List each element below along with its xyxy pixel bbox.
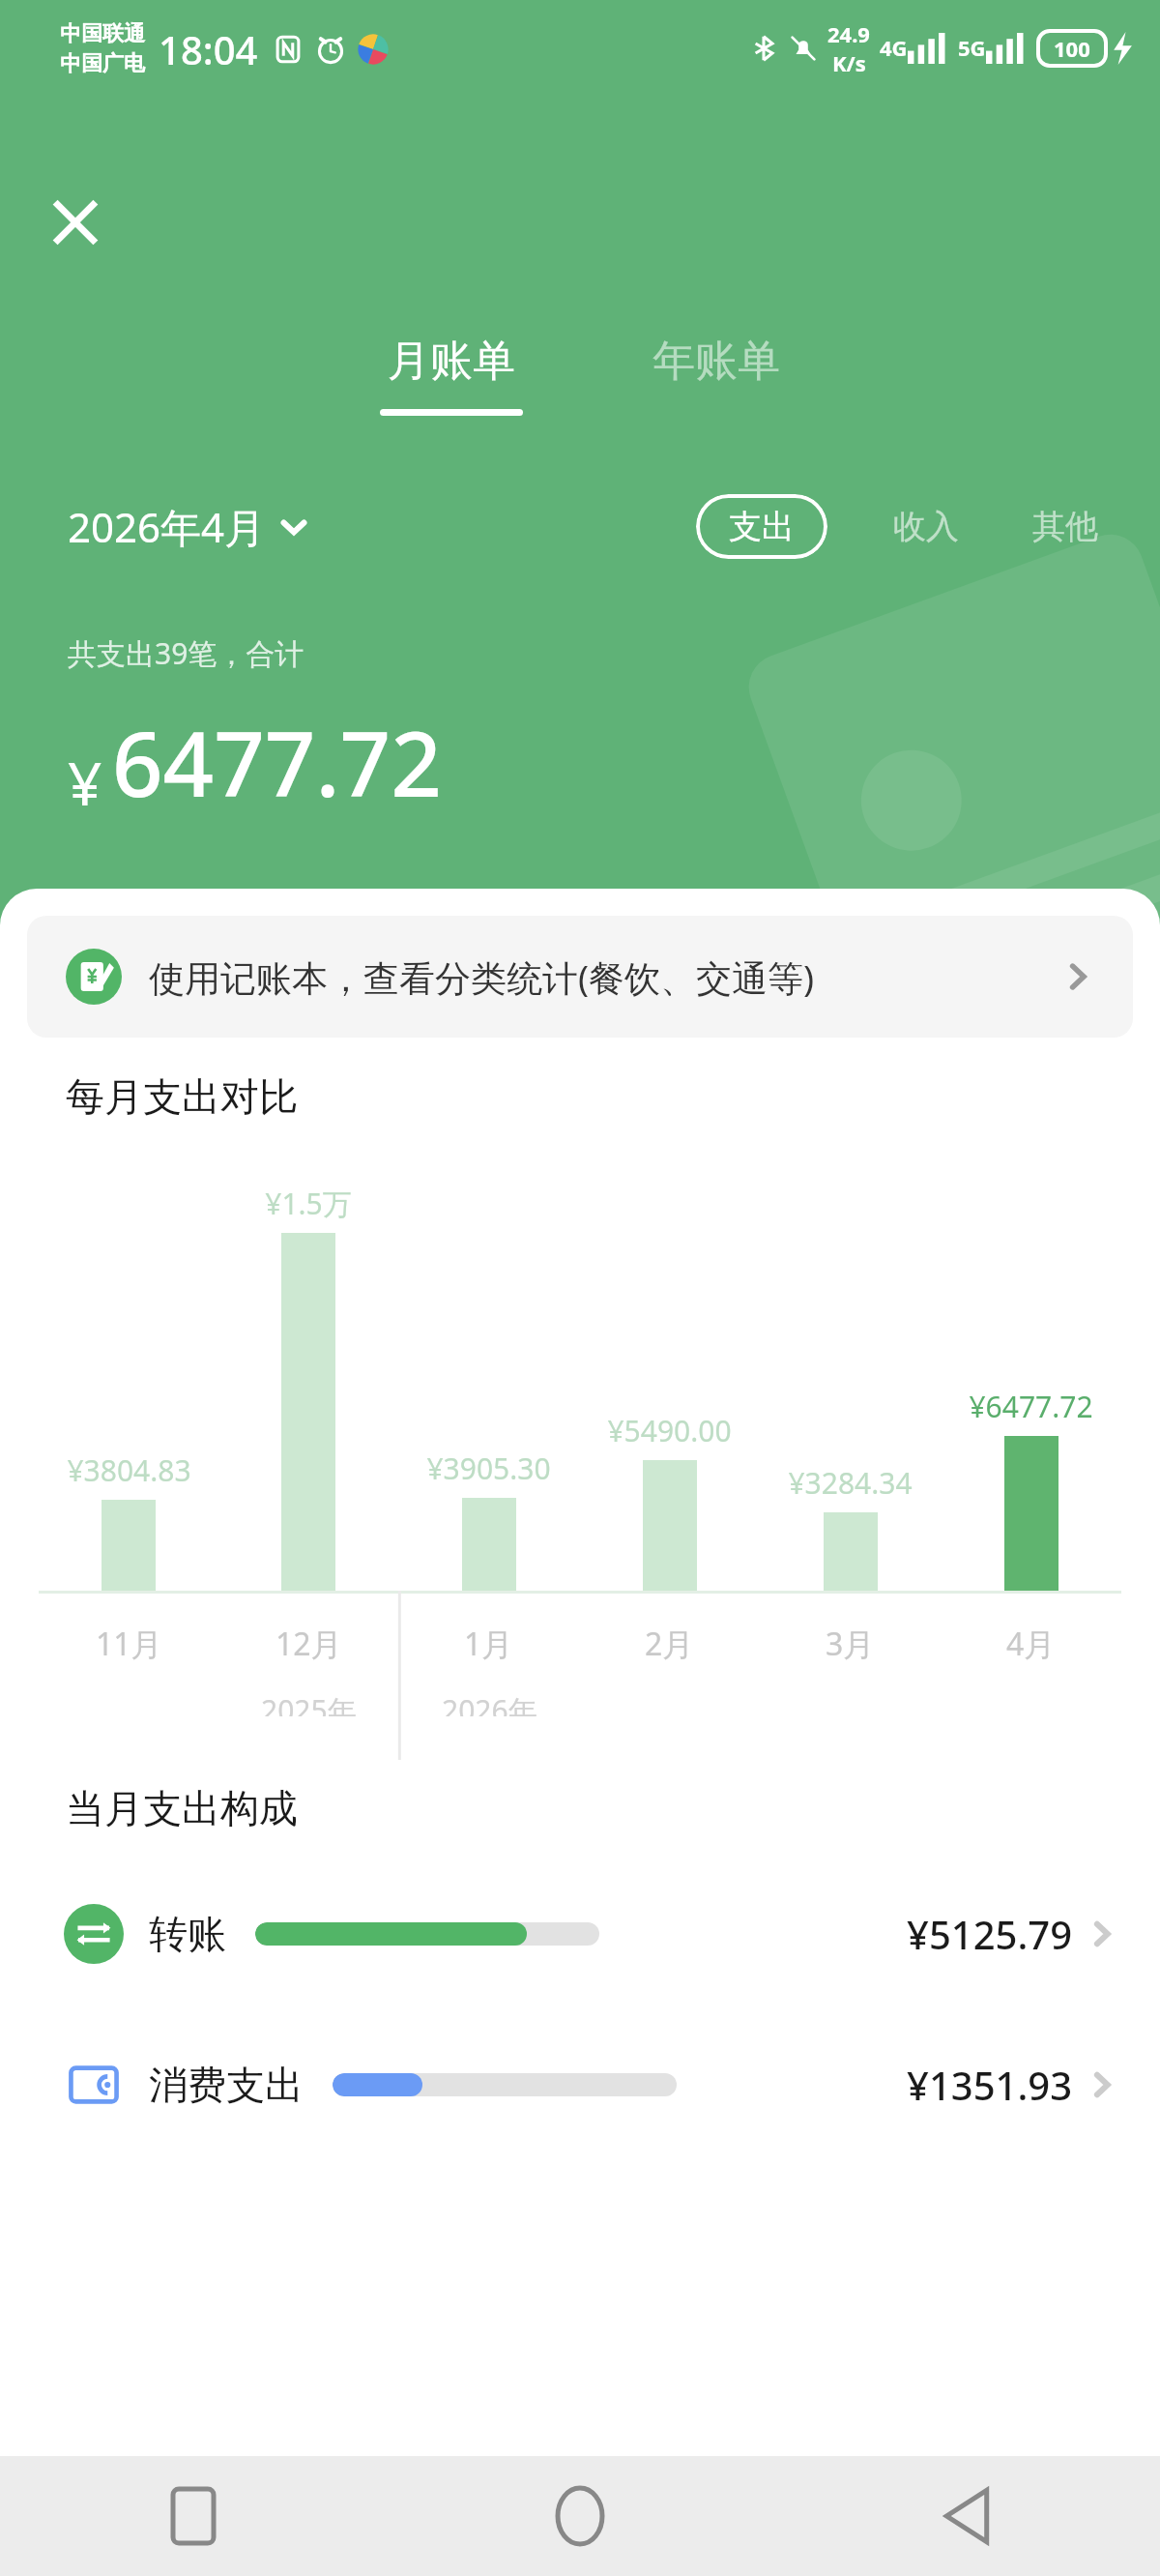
staticText: 支出: [729, 506, 795, 547]
button[interactable]: 支出: [696, 494, 827, 559]
staticText: ¥1.5万: [265, 1184, 352, 1223]
staticText: 月账单: [388, 335, 515, 388]
staticText: ¥5125.79: [907, 1908, 1073, 1960]
staticText: K/s: [832, 48, 866, 77]
staticText: 18:04: [159, 23, 258, 75]
staticText: 6477.72: [112, 702, 442, 823]
staticText: ¥5490.00: [607, 1411, 732, 1450]
button[interactable]: 月账单: [357, 329, 546, 422]
staticText: ¥: [68, 742, 102, 823]
staticText: 2026年: [442, 1690, 537, 1716]
staticText: 年账单: [652, 335, 780, 388]
button[interactable]: 年账单: [629, 329, 803, 422]
staticText: 4月: [1006, 1623, 1056, 1665]
button[interactable]: Close: [33, 180, 118, 265]
button[interactable]: 收入: [885, 494, 967, 559]
staticText: 中国联通: [60, 20, 145, 47]
button[interactable]: 消费支出: [0, 2047, 1160, 2122]
button[interactable]: 转账: [0, 1896, 1160, 1972]
button[interactable]: Back: [773, 2456, 1160, 2576]
staticText: 使用记账本，查看分类统计(餐饮、交通等): [149, 952, 815, 1002]
staticText: ¥3905.30: [426, 1449, 551, 1488]
staticText: ¥3284.34: [788, 1463, 913, 1503]
button[interactable]: 其他: [1025, 494, 1106, 559]
staticText: 24.9: [827, 19, 870, 48]
staticText: 5G: [958, 33, 986, 62]
staticText: 2025年: [261, 1690, 357, 1716]
staticText: 其他: [1032, 506, 1098, 547]
staticText: ¥1351.93: [907, 2059, 1073, 2111]
staticText: 消费支出: [149, 2061, 304, 2109]
button[interactable]: Recent apps: [0, 2456, 387, 2576]
staticText: 2月: [645, 1623, 694, 1665]
staticText: 中国广电: [60, 50, 145, 77]
staticText: ¥6477.72: [969, 1387, 1093, 1426]
staticText: 共支出39笔，合计: [68, 633, 304, 673]
staticText: 每月支出对比: [66, 1072, 298, 1121]
staticText: 当月支出构成: [66, 1784, 298, 1832]
staticText: 转账: [149, 1910, 226, 1958]
staticText: ¥3804.83: [67, 1450, 191, 1490]
staticText: 12月: [275, 1623, 342, 1665]
button[interactable]: 2026年4月: [68, 491, 308, 562]
staticText: 1月: [464, 1623, 513, 1665]
staticText: 11月: [96, 1623, 162, 1665]
staticText: 100: [1054, 34, 1090, 63]
staticText: 收入: [893, 506, 959, 547]
button[interactable]: Home: [387, 2456, 773, 2576]
button[interactable]: 使用记账本，查看分类统计(餐饮、交通等): [27, 916, 1133, 1038]
staticText: 4G: [880, 33, 908, 62]
staticText: 3月: [826, 1623, 875, 1665]
staticText: 2026年4月: [68, 499, 266, 554]
